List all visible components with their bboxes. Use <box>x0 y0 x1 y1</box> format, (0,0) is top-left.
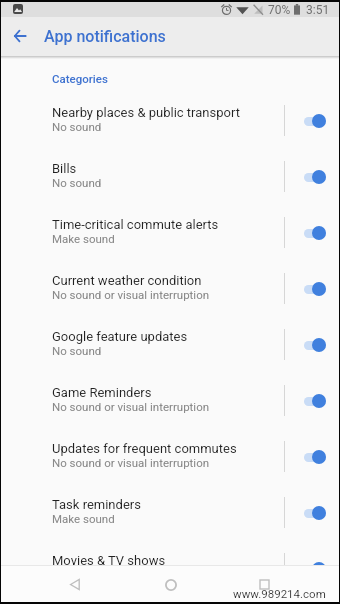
staticText: www.989214.com <box>233 587 326 600</box>
button[interactable]: Home <box>153 567 188 602</box>
button[interactable]: Toggle notification category <box>292 215 338 251</box>
button[interactable]: Nearby places & public transport <box>0 91 340 147</box>
staticText: Make sound <box>52 232 115 245</box>
staticText: Bills <box>52 161 77 176</box>
staticText: Updates for frequent commutes <box>52 441 237 456</box>
staticText: 70% <box>268 3 291 17</box>
button[interactable]: Toggle notification category <box>292 383 338 419</box>
staticText: No sound <box>52 176 102 189</box>
button[interactable]: Toggle notification category <box>292 439 338 475</box>
staticText: 3:51 <box>306 3 330 17</box>
button[interactable]: Updates for frequent commutes <box>0 427 340 483</box>
button[interactable]: Toggle notification category <box>292 271 338 307</box>
button[interactable]: Toggle notification category <box>292 159 338 195</box>
button[interactable]: Current weather condition <box>0 259 340 315</box>
staticText: Google feature updates <box>52 329 188 344</box>
staticText: No sound <box>52 344 102 357</box>
button[interactable]: Game Reminders <box>0 371 340 427</box>
staticText: No sound or visual interruption <box>52 456 210 469</box>
staticText: Categories <box>52 72 108 85</box>
staticText: App notifications <box>44 27 166 46</box>
button[interactable]: Task reminders <box>0 483 340 539</box>
staticText: No sound or visual interruption <box>52 400 210 413</box>
button[interactable]: Toggle notification category <box>292 103 338 139</box>
staticText: Game Reminders <box>52 385 152 400</box>
staticText: Current weather condition <box>52 273 202 288</box>
staticText: Time-critical commute alerts <box>52 217 219 232</box>
staticText: Nearby places & public transport <box>52 105 240 120</box>
button[interactable]: Bills <box>0 147 340 203</box>
button[interactable]: Toggle notification category <box>292 495 338 531</box>
button[interactable]: Toggle notification category <box>292 327 338 363</box>
button[interactable]: Recent apps <box>247 567 282 602</box>
button[interactable]: Time-critical commute alerts <box>0 203 340 259</box>
button[interactable]: Navigate up <box>3 19 37 53</box>
staticText: Task reminders <box>52 497 141 512</box>
staticText: Movies & TV shows <box>52 553 166 565</box>
staticText: Make sound <box>52 512 115 525</box>
staticText: No sound or visual interruption <box>52 288 210 301</box>
button[interactable]: Movies & TV shows <box>0 539 340 565</box>
staticText: No sound <box>52 120 102 133</box>
button[interactable]: Toggle notification category <box>292 551 338 565</box>
button[interactable]: Google feature updates <box>0 315 340 371</box>
button[interactable]: Back <box>57 567 92 602</box>
